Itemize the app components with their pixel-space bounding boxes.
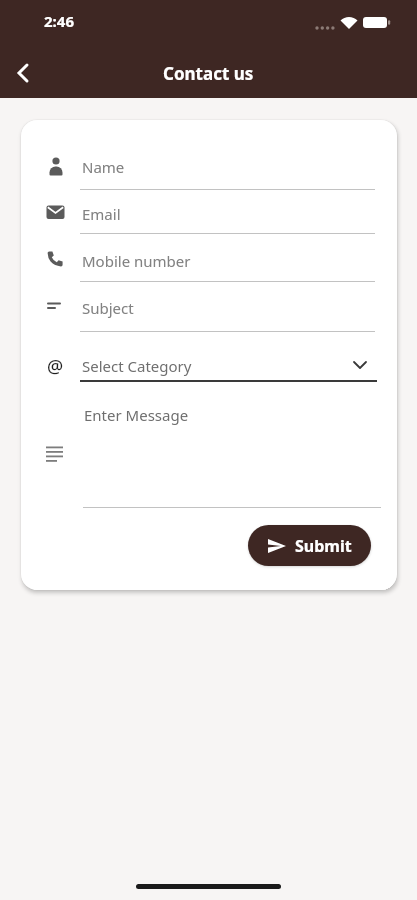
- staticText: Mobile number: [82, 251, 191, 271]
- staticText: Submit: [295, 535, 352, 557]
- button[interactable]: [80, 146, 377, 190]
- button[interactable]: Submit: [248, 525, 371, 566]
- button[interactable]: Select Category: [80, 348, 375, 382]
- staticText: Select Category: [82, 356, 192, 376]
- button[interactable]: [80, 286, 377, 332]
- staticText: Email: [82, 204, 121, 224]
- button[interactable]: [3, 53, 43, 93]
- staticText: Name: [82, 157, 125, 177]
- staticText: @: [47, 354, 64, 379]
- button[interactable]: [80, 238, 377, 282]
- staticText: Enter Message: [84, 405, 189, 425]
- button[interactable]: [83, 402, 381, 508]
- staticText: 2:46: [44, 11, 74, 31]
- staticText: Contact us: [163, 62, 254, 85]
- staticText: Subject: [82, 298, 134, 318]
- button[interactable]: [80, 192, 377, 234]
